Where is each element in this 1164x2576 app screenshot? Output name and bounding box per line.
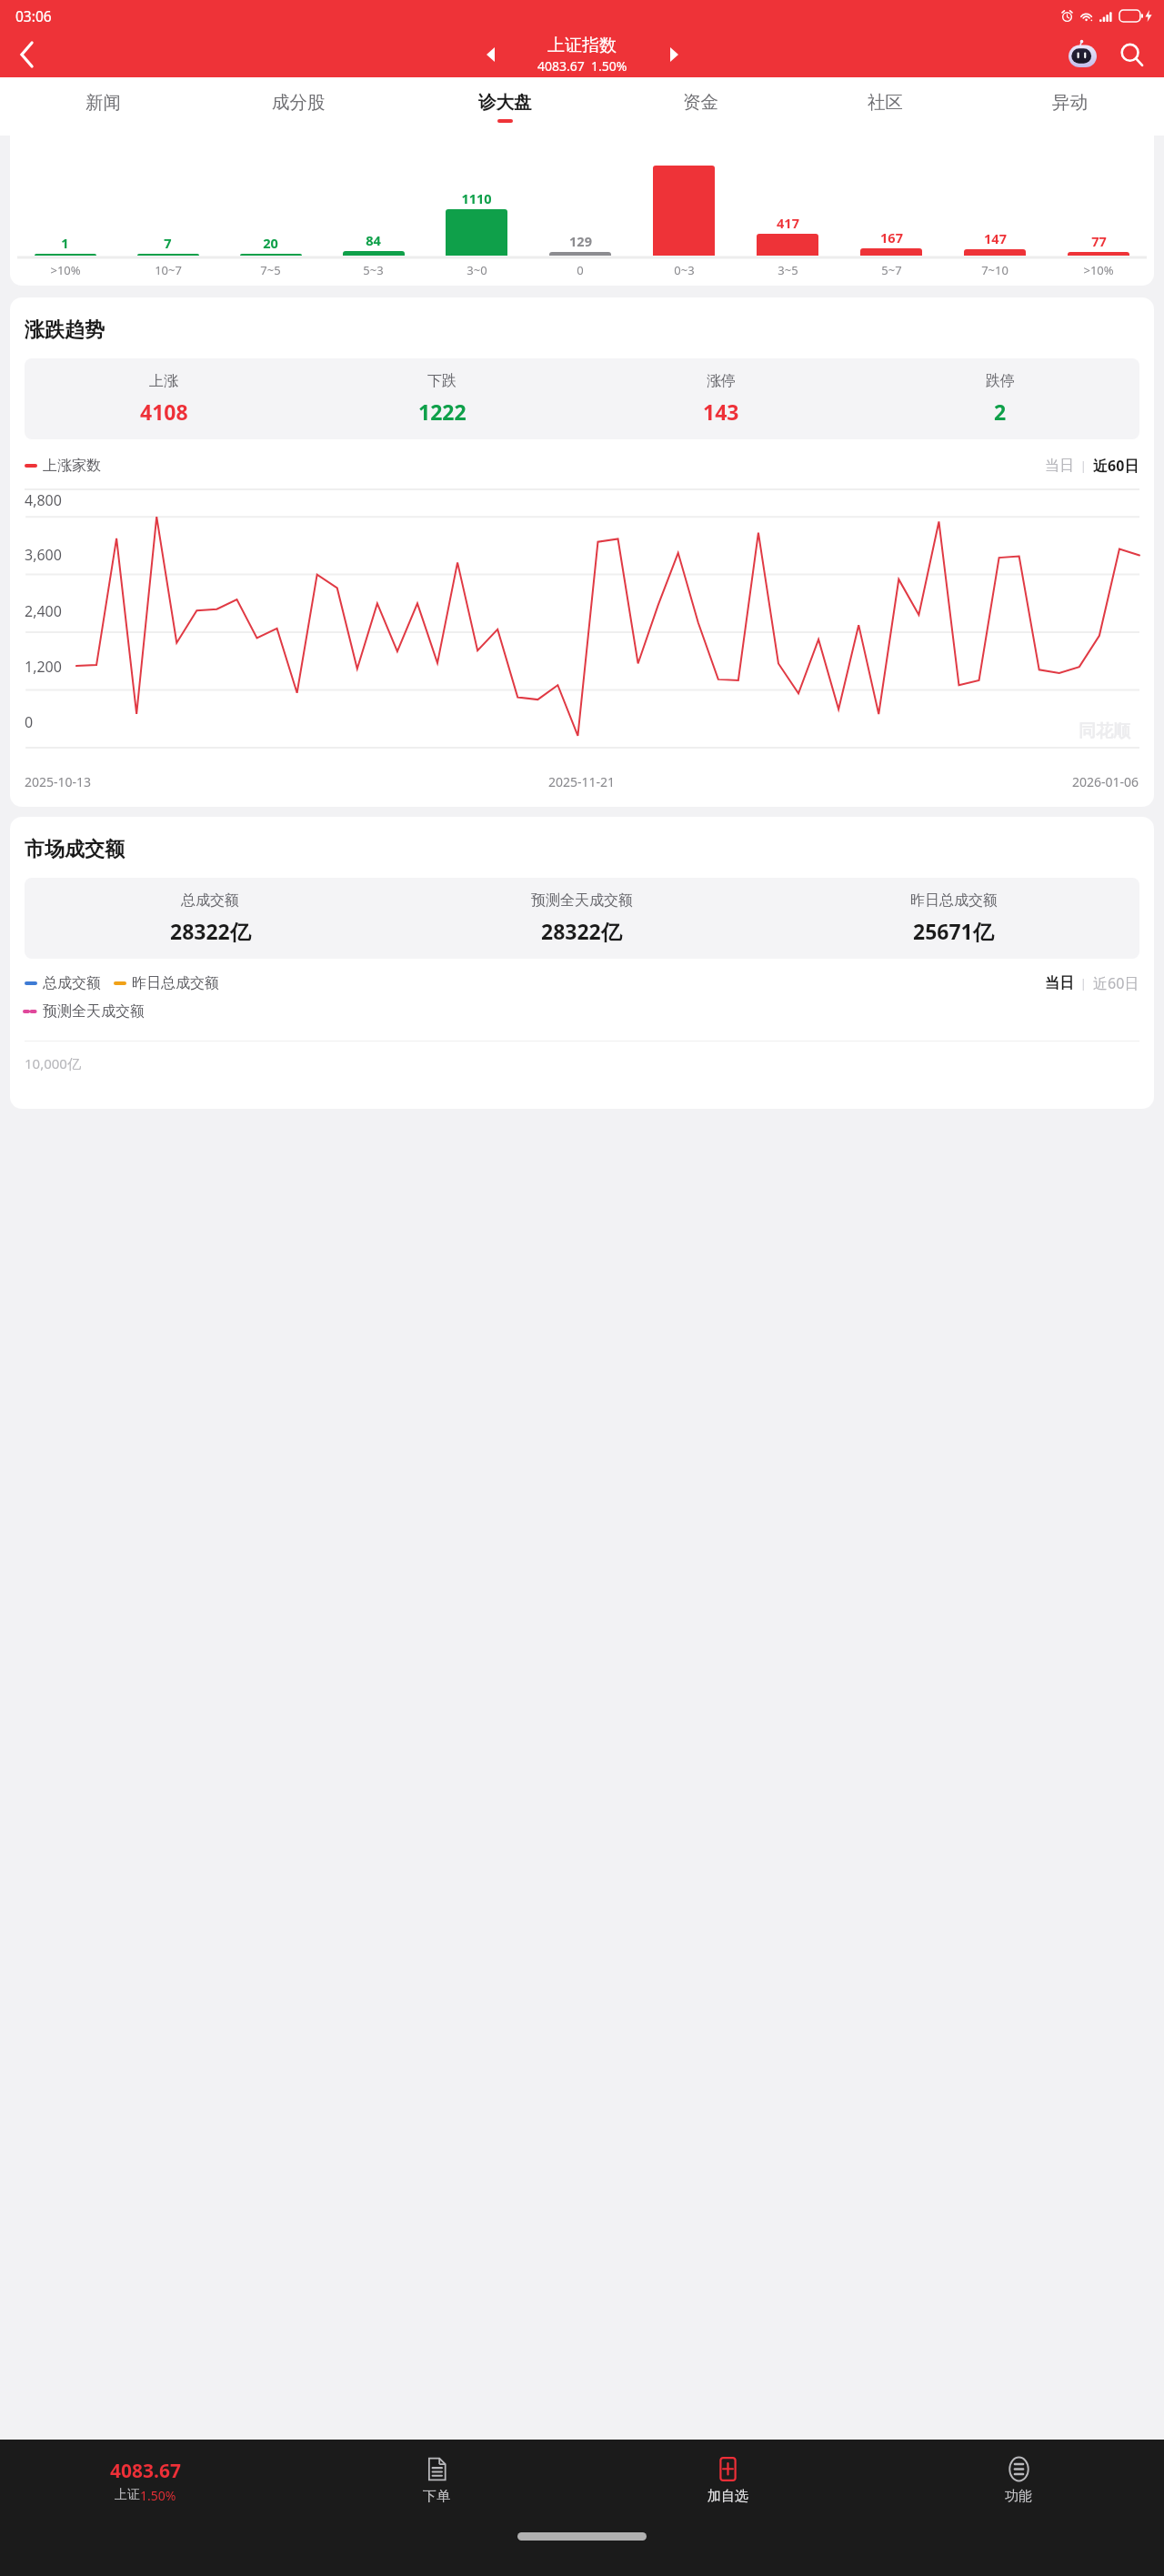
- staticText: 当日: [1045, 457, 1074, 475]
- staticText: 涨跌趋势: [25, 317, 105, 343]
- button[interactable]: Search: [1113, 36, 1149, 73]
- staticText: 昨日总成交额: [910, 891, 998, 910]
- staticText: 167: [880, 228, 903, 247]
- button[interactable]: 总成交额: [25, 891, 396, 945]
- staticText: 上涨: [149, 372, 178, 390]
- staticText: 7~10: [981, 262, 1008, 278]
- button[interactable]: 昨日总成交额: [114, 974, 219, 992]
- staticText: 4083.67: [110, 2458, 181, 2484]
- staticText: 1.50%: [140, 2487, 176, 2504]
- staticText: 功能: [1005, 2488, 1032, 2505]
- button[interactable]: Next: [658, 39, 689, 70]
- staticText: 2: [994, 397, 1007, 426]
- button[interactable]: 资金: [608, 77, 793, 136]
- button[interactable]: 当日: [1045, 457, 1074, 475]
- staticText: 25671亿: [913, 917, 994, 945]
- staticText: 1,200: [25, 657, 62, 677]
- button[interactable]: 4083.67: [0, 2440, 291, 2521]
- staticText: 7: [164, 234, 172, 252]
- staticText: 143: [703, 397, 739, 426]
- button[interactable]: 新闻: [11, 77, 196, 136]
- staticText: 10,000亿: [25, 1054, 81, 1072]
- button[interactable]: Back: [0, 31, 55, 77]
- staticText: 昨日总成交额: [132, 974, 219, 992]
- button[interactable]: 预测全天成交额: [396, 891, 768, 945]
- staticText: 涨停: [707, 372, 736, 390]
- staticText: 5~3: [363, 262, 384, 278]
- staticText: 成分股: [272, 91, 326, 114]
- staticText: 28322亿: [170, 917, 251, 945]
- button[interactable]: Previous: [475, 39, 506, 70]
- staticText: 20: [263, 234, 278, 252]
- staticText: 129: [569, 232, 592, 250]
- staticText: 03:06: [15, 6, 52, 25]
- staticText: 28322亿: [541, 917, 622, 945]
- button[interactable]: 功能: [873, 2440, 1164, 2521]
- button[interactable]: 总成交额: [25, 974, 101, 992]
- staticText: 同花顺: [1079, 720, 1130, 742]
- staticText: 417: [777, 214, 799, 232]
- button[interactable]: 预测全天成交额: [25, 1002, 145, 1021]
- staticText: 资金: [683, 91, 718, 114]
- staticText: 77: [1091, 232, 1107, 250]
- staticText: 总成交额: [43, 974, 101, 992]
- staticText: 预测全天成交额: [43, 1002, 145, 1021]
- staticText: 上证: [115, 2487, 140, 2503]
- staticText: 2025-10-13: [25, 773, 92, 790]
- staticText: 1110: [461, 189, 492, 207]
- button[interactable]: 成分股: [196, 77, 402, 136]
- staticText: 3~0: [467, 262, 487, 278]
- staticText: 0: [25, 712, 34, 732]
- staticText: 2026-01-06: [1072, 773, 1139, 790]
- staticText: 预测全天成交额: [531, 891, 633, 910]
- staticText: |: [1074, 975, 1093, 991]
- staticText: 3,600: [25, 545, 62, 565]
- button[interactable]: 昨日总成交额: [768, 891, 1139, 945]
- staticText: 5~7: [881, 262, 902, 278]
- staticText: 1: [61, 234, 69, 252]
- staticText: 147: [984, 229, 1007, 247]
- staticText: |: [1074, 458, 1093, 474]
- button[interactable]: 跌停: [860, 372, 1139, 426]
- button[interactable]: 涨停: [581, 372, 860, 426]
- button[interactable]: 当日: [1045, 974, 1074, 992]
- staticText: 总成交额: [181, 891, 239, 910]
- staticText: 跌停: [986, 372, 1015, 390]
- button[interactable]: AI assistant: [1064, 36, 1100, 73]
- staticText: >10%: [1083, 262, 1114, 278]
- staticText: 异动: [1052, 91, 1088, 114]
- staticText: 新闻: [85, 91, 121, 114]
- staticText: 4083.67 1.50%: [537, 57, 627, 75]
- staticText: 0: [577, 262, 584, 278]
- staticText: 4108: [140, 397, 188, 426]
- staticText: 下跌: [427, 372, 457, 390]
- button[interactable]: 上涨: [25, 372, 303, 426]
- staticText: 3~5: [778, 262, 798, 278]
- button[interactable]: 异动: [978, 77, 1162, 136]
- staticText: 84: [366, 231, 381, 249]
- button[interactable]: 近60日: [1093, 456, 1139, 476]
- button[interactable]: 社区: [793, 77, 978, 136]
- staticText: 诊大盘: [478, 91, 532, 114]
- staticText: 上证指数: [547, 35, 617, 56]
- button[interactable]: 近60日: [1093, 973, 1139, 993]
- staticText: 当日: [1045, 974, 1074, 992]
- staticText: 社区: [868, 91, 903, 114]
- staticText: 下单: [423, 2488, 450, 2505]
- button[interactable]: 诊大盘: [402, 77, 608, 136]
- staticText: 10~7: [155, 262, 182, 278]
- staticText: 近60日: [1093, 973, 1139, 993]
- staticText: 2025-11-21: [548, 773, 616, 790]
- button[interactable]: 加自选: [582, 2440, 873, 2521]
- button[interactable]: 下跌: [303, 372, 581, 426]
- staticText: 4,800: [25, 490, 62, 510]
- button[interactable]: 上证指数: [506, 35, 658, 75]
- staticText: 市场成交额: [25, 837, 125, 862]
- staticText: 1222: [418, 397, 467, 426]
- staticText: 上涨家数: [43, 457, 101, 475]
- staticText: >10%: [50, 262, 81, 278]
- button[interactable]: 下单: [291, 2440, 582, 2521]
- staticText: 2,400: [25, 601, 62, 621]
- staticText: 0~3: [674, 262, 695, 278]
- staticText: 近60日: [1093, 456, 1139, 476]
